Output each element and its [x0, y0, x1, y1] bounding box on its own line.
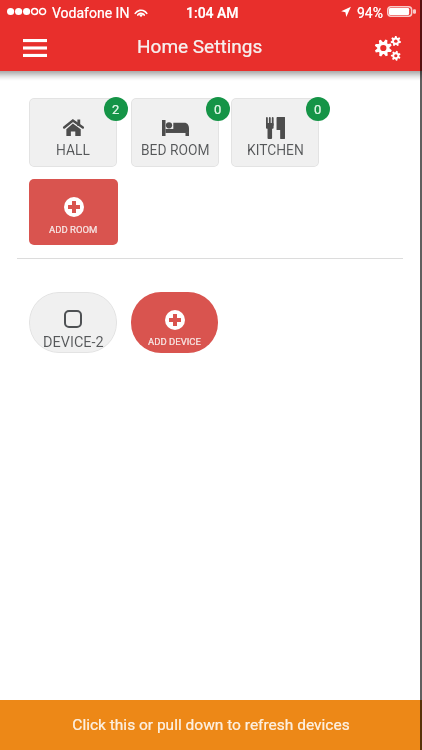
staticText: 0	[214, 102, 222, 117]
staticText: HALL	[56, 142, 90, 158]
button[interactable]: HALL	[29, 98, 117, 167]
staticText: BED ROOM	[141, 142, 210, 158]
staticText: DEVICE-2	[43, 334, 104, 351]
button[interactable]: ADD ROOM	[29, 179, 118, 245]
staticText: ADD DEVICE	[148, 336, 201, 347]
staticText: ADD ROOM	[49, 224, 98, 235]
staticText: 0	[314, 102, 322, 117]
button[interactable]: KITCHEN	[231, 98, 319, 167]
staticText: KITCHEN	[247, 142, 304, 158]
staticText: 1:04 AM	[186, 5, 239, 21]
button[interactable]: Open navigation menu	[12, 26, 58, 71]
button[interactable]: ADD DEVICE	[131, 292, 218, 353]
staticText: Home Settings	[137, 35, 263, 57]
staticText: Click this or pull down to refresh devic…	[72, 716, 350, 734]
staticText: 2	[112, 102, 120, 117]
staticText: 94%	[357, 5, 383, 21]
button[interactable]: Click this or pull down to refresh devic…	[0, 700, 422, 750]
staticText: Vodafone IN	[52, 5, 130, 21]
button[interactable]: BED ROOM	[131, 98, 219, 167]
button[interactable]: Settings	[364, 26, 410, 71]
button[interactable]: DEVICE-2	[29, 292, 117, 353]
